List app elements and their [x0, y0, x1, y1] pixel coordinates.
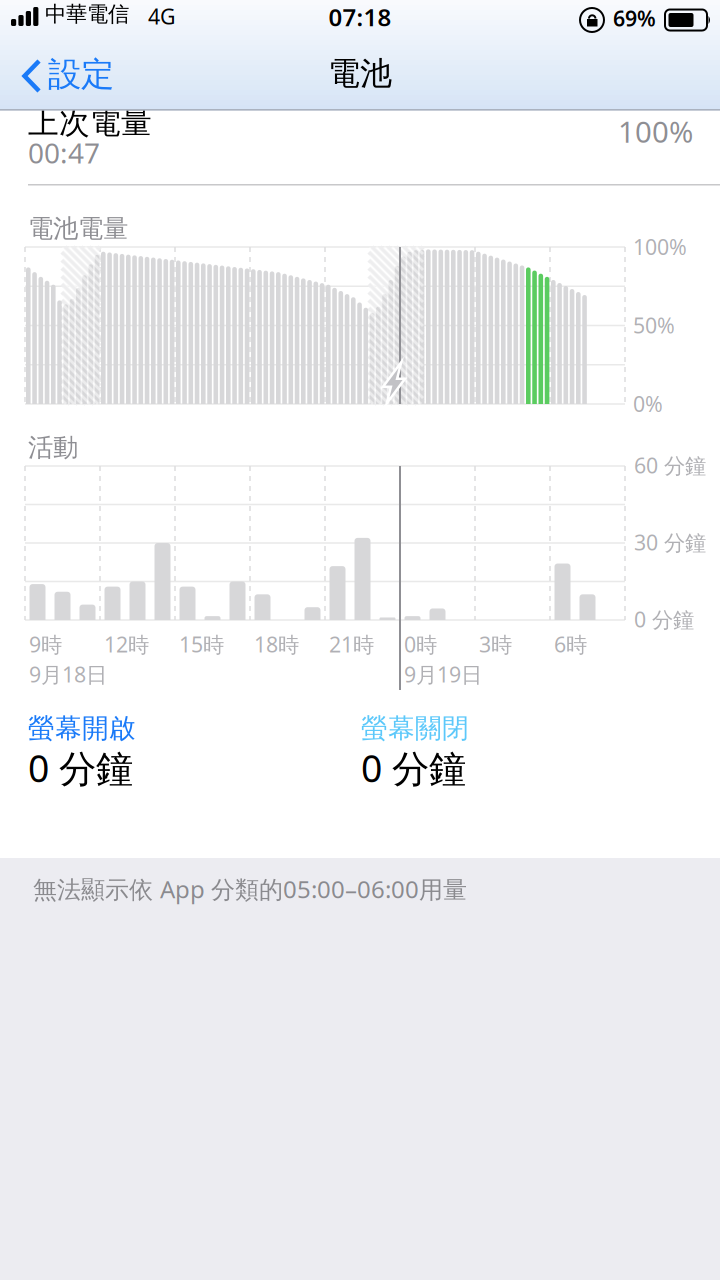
staticText: 21時 — [329, 630, 374, 658]
staticText: 30 分鐘 — [634, 528, 706, 556]
staticText: 螢幕開啟 — [28, 712, 136, 745]
staticText: 50% — [633, 311, 675, 339]
button[interactable]: 螢幕開啟 — [28, 712, 318, 792]
staticText: 0 分鐘 — [28, 743, 133, 793]
staticText: 18時 — [254, 630, 299, 658]
staticText: 電池 — [328, 54, 392, 93]
staticText: 0時 — [404, 630, 437, 658]
staticText: 9時 — [29, 630, 62, 658]
staticText: 69% — [613, 4, 656, 32]
staticText: 中華電信 — [45, 1, 129, 27]
staticText: 0 分鐘 — [634, 605, 694, 633]
staticText: 0% — [633, 389, 663, 418]
staticText: 100% — [633, 232, 687, 261]
staticText: 活動 — [28, 432, 78, 463]
staticText: 60 分鐘 — [634, 451, 706, 479]
staticText: 0 分鐘 — [361, 743, 466, 793]
staticText: 9月18日 — [29, 660, 107, 688]
staticText: 15時 — [179, 630, 224, 658]
staticText: 4G — [148, 2, 176, 30]
button[interactable]: 設定 — [21, 54, 141, 98]
staticText: 9月19日 — [404, 660, 482, 688]
staticText: 3時 — [479, 630, 512, 658]
staticText: 100% — [618, 112, 693, 151]
staticText: 07:18 — [328, 1, 391, 33]
staticText: 電池電量 — [28, 213, 128, 244]
staticText: 上次電量 — [28, 104, 152, 142]
staticText: 無法顯示依 App 分類的05:00–06:00用量 — [33, 873, 467, 905]
staticText: 設定 — [48, 54, 114, 95]
staticText: 12時 — [104, 630, 149, 658]
staticText: 6時 — [554, 630, 587, 658]
staticText: 00:47 — [28, 134, 100, 171]
staticText: 螢幕關閉 — [361, 712, 469, 745]
button[interactable]: 螢幕關閉 — [361, 712, 651, 792]
